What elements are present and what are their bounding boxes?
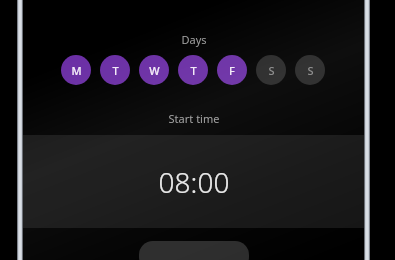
button[interactable]: F xyxy=(217,55,247,85)
button[interactable]: 08:00 xyxy=(23,135,365,228)
button[interactable]: T xyxy=(100,55,130,85)
staticText: 08:00 xyxy=(23,163,365,201)
staticText: S xyxy=(307,63,314,78)
staticText: S xyxy=(268,63,275,78)
staticText: T xyxy=(190,63,197,78)
button[interactable]: S xyxy=(256,55,286,85)
staticText: F xyxy=(229,63,235,78)
staticText: T xyxy=(112,63,119,78)
button[interactable]: Save xyxy=(139,241,249,260)
button[interactable]: T xyxy=(178,55,208,85)
staticText: Start time xyxy=(23,111,365,126)
button[interactable]: W xyxy=(139,55,169,85)
button[interactable]: S xyxy=(295,55,325,85)
button[interactable]: M xyxy=(61,55,91,85)
staticText: Days xyxy=(23,32,365,47)
staticText: W xyxy=(149,63,160,78)
staticText: M xyxy=(71,63,82,78)
